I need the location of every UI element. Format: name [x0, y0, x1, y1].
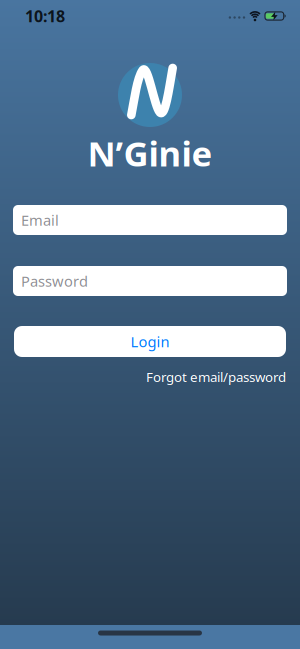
- staticText: Login: [130, 332, 169, 351]
- staticText: Forgot email/password: [146, 368, 286, 386]
- staticText: Password: [21, 271, 88, 291]
- button[interactable]: Forgot email/password: [146, 368, 286, 386]
- staticText: 10:18: [25, 5, 65, 27]
- staticText: Email: [21, 210, 59, 230]
- button[interactable]: Password: [13, 266, 287, 296]
- staticText: N’Ginie: [87, 130, 212, 176]
- button[interactable]: Login: [14, 326, 286, 357]
- button[interactable]: Email: [13, 205, 287, 235]
